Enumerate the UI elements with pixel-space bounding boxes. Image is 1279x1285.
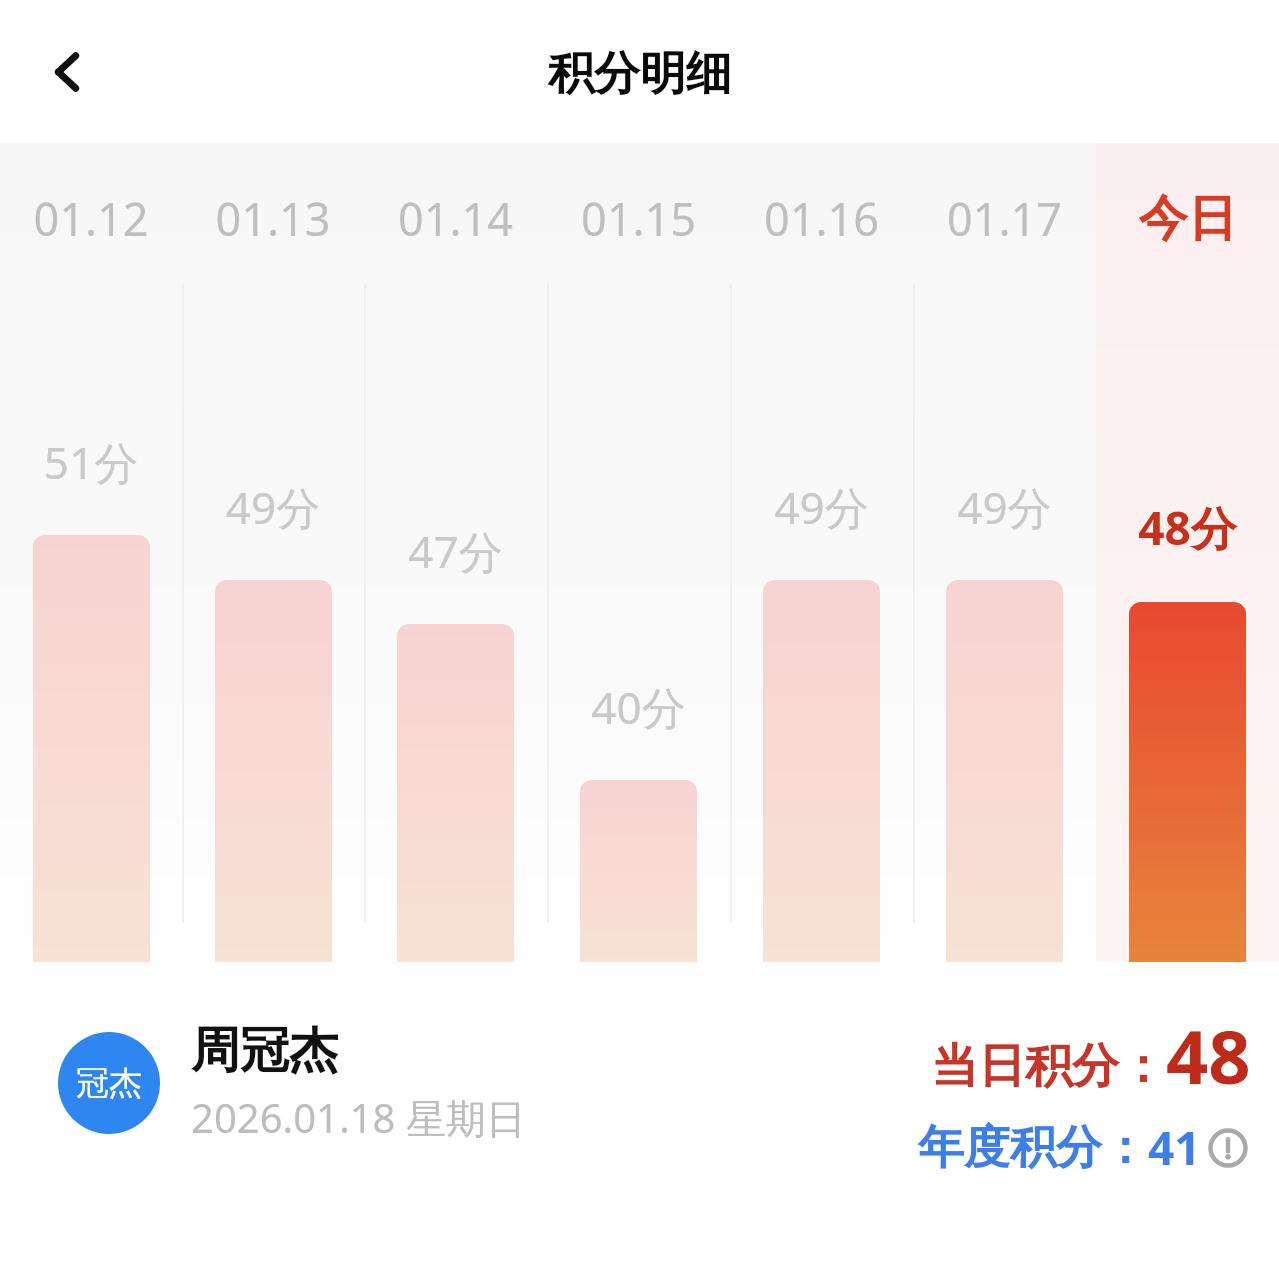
staticText: 年度积分：: [918, 1119, 1148, 1177]
staticText: 41: [1148, 1116, 1201, 1179]
staticText: 01.13: [182, 188, 364, 249]
other: Info: [1205, 1125, 1251, 1171]
staticText: 49分: [913, 477, 1096, 537]
staticText: 当日积分：: [931, 1037, 1166, 1096]
button[interactable]: 年度积分：: [918, 1116, 1251, 1179]
staticText: 48分: [1096, 496, 1279, 559]
staticText: 01.15: [547, 188, 730, 249]
button[interactable]: Back: [20, 24, 116, 120]
staticText: 49分: [182, 477, 364, 537]
staticText: 49分: [730, 477, 913, 537]
staticText: 今日: [1096, 188, 1279, 250]
button[interactable]: 01.12: [0, 143, 182, 963]
button[interactable]: 01.14: [364, 143, 547, 963]
staticText: 51分: [0, 432, 182, 492]
staticText: 01.17: [913, 188, 1096, 249]
staticText: 40分: [547, 677, 730, 737]
staticText: 48: [1166, 1005, 1251, 1106]
button[interactable]: 冠杰: [58, 1020, 526, 1145]
staticText: 01.16: [730, 188, 913, 249]
staticText: 01.12: [0, 188, 182, 249]
staticText: 冠杰: [76, 1062, 142, 1104]
button[interactable]: 01.15: [547, 143, 730, 963]
button[interactable]: 01.17: [913, 143, 1096, 963]
button[interactable]: 今日: [1096, 143, 1279, 963]
staticText: 周冠杰: [191, 1020, 338, 1082]
button[interactable]: 当日积分：: [931, 1005, 1251, 1106]
staticText: 47分: [364, 521, 547, 581]
staticText: 01.14: [364, 188, 547, 249]
staticText: 2026.01.18 星期日: [191, 1090, 526, 1145]
staticText: 积分明细: [548, 45, 732, 103]
button[interactable]: 01.13: [182, 143, 364, 963]
button[interactable]: 01.16: [730, 143, 913, 963]
